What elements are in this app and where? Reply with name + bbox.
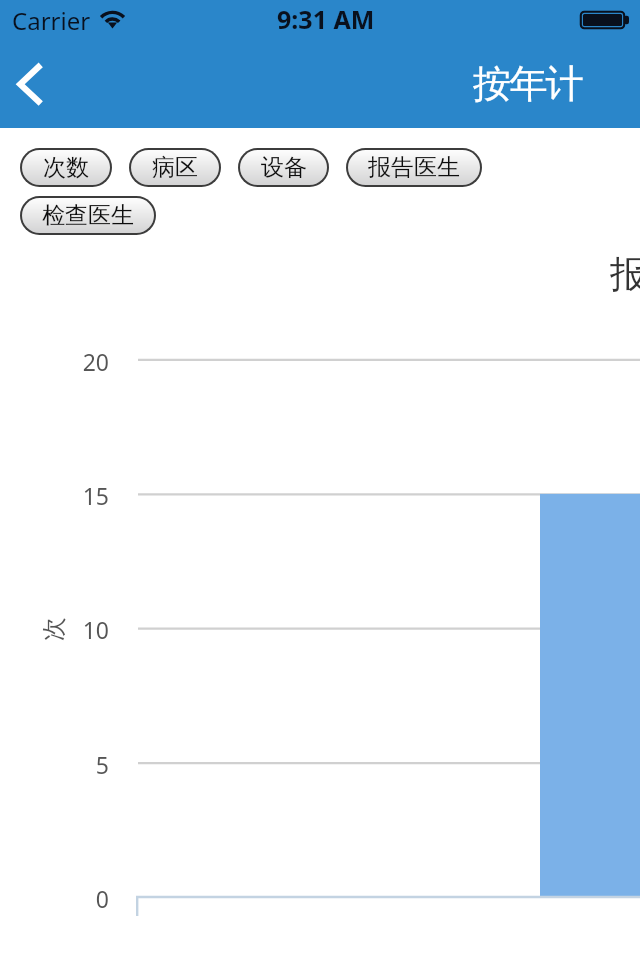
staticText: 报告医生统计 — [610, 251, 640, 298]
staticText: 按年计 — [473, 60, 582, 109]
staticText: 9:31 AM — [277, 2, 375, 36]
staticText: 次数 — [43, 153, 89, 182]
button[interactable]: 设备 — [238, 148, 329, 187]
button[interactable]: 报告医生 — [346, 148, 482, 187]
staticText: 10 — [82, 614, 109, 645]
staticText: 病区 — [152, 153, 198, 182]
button[interactable]: 病区 — [129, 148, 221, 187]
staticText: 报告医生 — [368, 153, 460, 182]
staticText: 15 — [82, 480, 109, 511]
staticText: 0 — [95, 883, 109, 914]
staticText: Carrier — [12, 4, 91, 37]
staticText: 次 — [39, 617, 69, 641]
staticText: 20 — [82, 346, 109, 377]
button[interactable]: Back — [4, 52, 62, 116]
staticText: 检查医生 — [42, 201, 134, 230]
button[interactable]: 检查医生 — [20, 196, 156, 235]
staticText: 设备 — [261, 153, 307, 182]
button[interactable]: 次数 — [20, 148, 112, 187]
staticText: 5 — [95, 749, 109, 780]
